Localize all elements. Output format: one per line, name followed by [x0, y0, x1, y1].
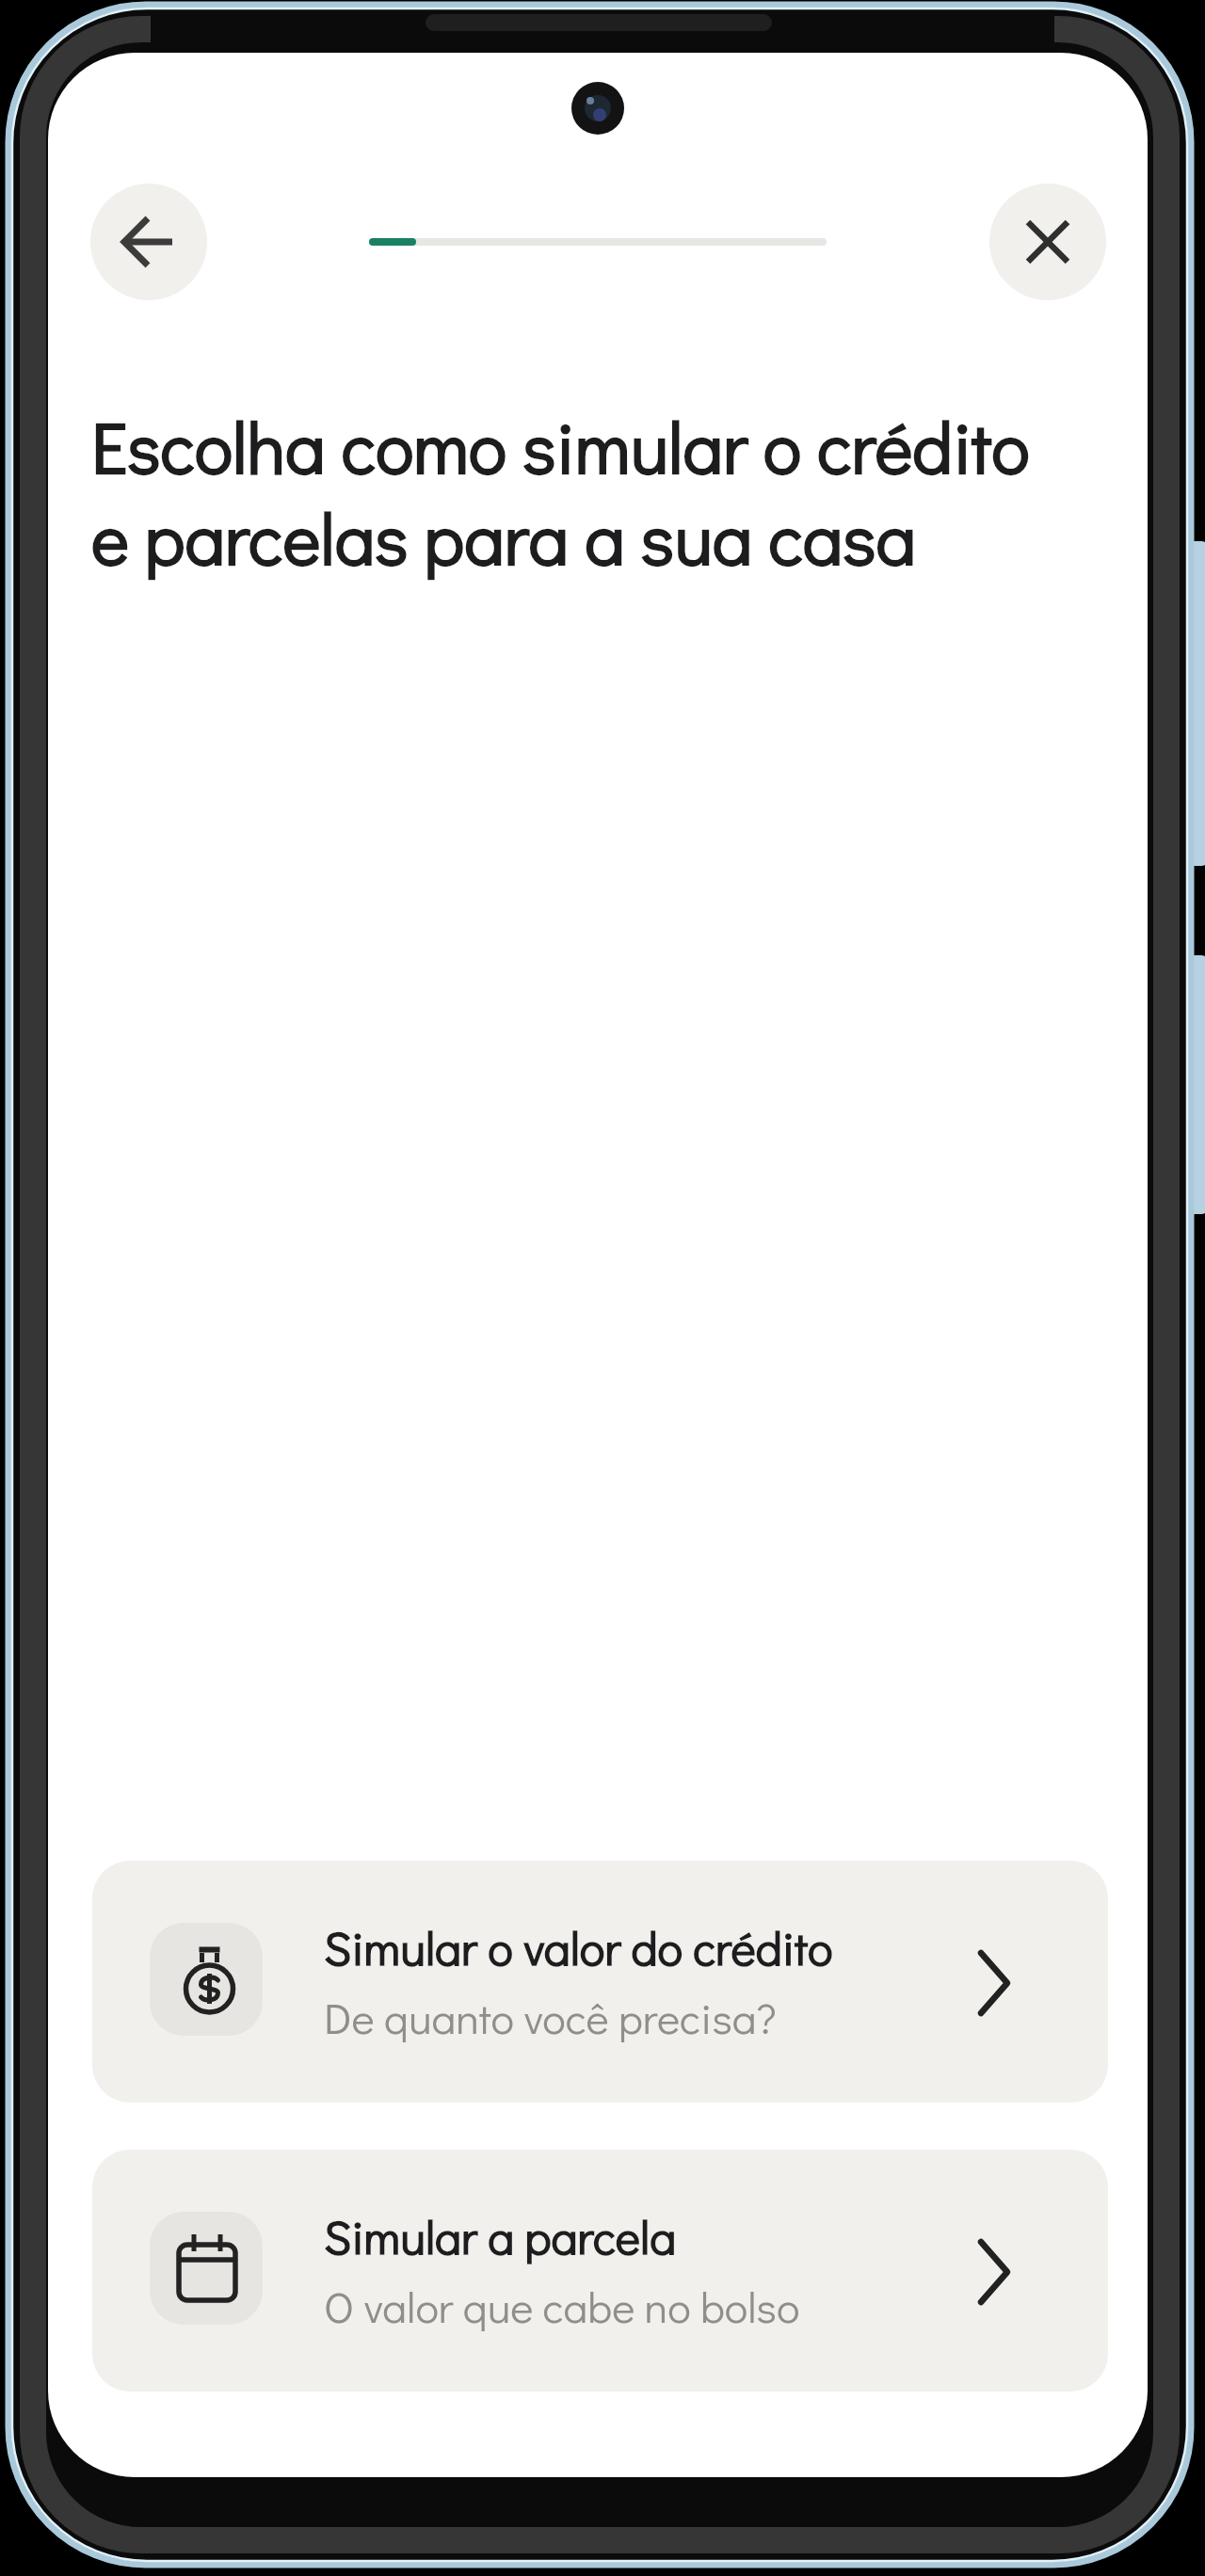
staticText: O valor que cabe no bolso: [324, 2278, 800, 2334]
button[interactable]: Simular o valor do crédito: [92, 1861, 1108, 2103]
staticText: Simular a parcela: [324, 2205, 677, 2267]
button[interactable]: Simular a parcela: [92, 2150, 1108, 2392]
staticText: Escolha como simular o crédito e parcela…: [91, 399, 1030, 584]
staticText: Simular o valor do crédito: [324, 1916, 833, 1978]
staticText: De quanto você precisa?: [324, 1989, 777, 2045]
button[interactable]: [989, 184, 1106, 300]
button[interactable]: [90, 184, 207, 300]
